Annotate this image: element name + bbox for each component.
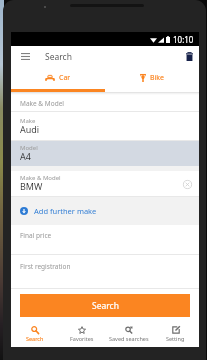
- staticText: Setting: [166, 335, 185, 342]
- staticText: Favorites: [70, 335, 94, 342]
- button[interactable]: First registration: [11, 255, 199, 289]
- button[interactable]: Saved searches: [105, 317, 152, 347]
- staticText: Saved searches: [109, 335, 149, 342]
- button[interactable]: Delete: [180, 46, 199, 67]
- button[interactable]: Final price: [11, 225, 199, 255]
- button[interactable]: Car: [11, 67, 105, 89]
- button[interactable]: Favorites: [58, 317, 105, 347]
- staticText: Search: [45, 51, 72, 63]
- button[interactable]: Make & Model: [11, 171, 199, 197]
- staticText: Add further make: [34, 206, 97, 216]
- button[interactable]: Search: [20, 294, 190, 317]
- button[interactable]: Add further make: [11, 197, 199, 225]
- staticText: First registration: [20, 262, 71, 271]
- button[interactable]: Clear: [181, 178, 194, 191]
- staticText: BMW: [20, 180, 43, 192]
- staticText: Car: [59, 73, 71, 83]
- button[interactable]: Bike: [105, 67, 199, 89]
- button[interactable]: Search: [11, 317, 58, 347]
- button[interactable]: Setting: [152, 317, 199, 347]
- button[interactable]: Menu: [16, 46, 35, 67]
- staticText: Model: [20, 144, 38, 152]
- staticText: Bike: [150, 73, 165, 83]
- staticText: Make: [20, 117, 36, 125]
- staticText: Search: [26, 335, 44, 342]
- staticText: Search: [92, 300, 119, 312]
- staticText: Final price: [20, 231, 52, 240]
- staticText: Audi: [20, 123, 40, 135]
- button[interactable]: Make: [11, 112, 199, 141]
- staticText: Make & Model: [20, 99, 64, 108]
- staticText: 10:10: [173, 34, 194, 45]
- button[interactable]: Model: [11, 141, 199, 166]
- staticText: Make & Model: [20, 174, 61, 182]
- button[interactable]: Make & Model: [11, 92, 199, 112]
- staticText: A4: [20, 150, 31, 162]
